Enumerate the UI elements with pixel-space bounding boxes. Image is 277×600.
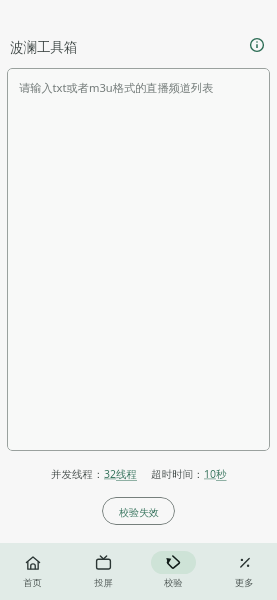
button[interactable]: 投屏 bbox=[71, 543, 136, 589]
button[interactable]: Info bbox=[245, 33, 269, 57]
staticText: 更多 bbox=[235, 577, 254, 589]
staticText: 校验 bbox=[164, 577, 183, 589]
staticText: 投屏 bbox=[94, 577, 113, 589]
staticText: 请输入txt或者m3u格式的直播频道列表 bbox=[19, 80, 214, 95]
staticText: 校验失效 bbox=[119, 506, 159, 519]
button[interactable]: 10秒 bbox=[204, 467, 227, 481]
staticText: 并发线程： bbox=[51, 468, 104, 481]
button[interactable]: 校验失效 bbox=[102, 497, 175, 525]
button[interactable]: 首页 bbox=[0, 543, 65, 589]
staticText: 波澜工具箱 bbox=[10, 39, 78, 56]
button[interactable]: 更多 bbox=[212, 543, 277, 589]
button[interactable]: 32线程 bbox=[104, 467, 138, 481]
button[interactable]: 校验 bbox=[141, 543, 206, 589]
staticText: 超时时间： bbox=[151, 468, 204, 481]
button[interactable]: 请输入txt或者m3u格式的直播频道列表 bbox=[7, 68, 270, 451]
staticText: 首页 bbox=[23, 577, 42, 589]
